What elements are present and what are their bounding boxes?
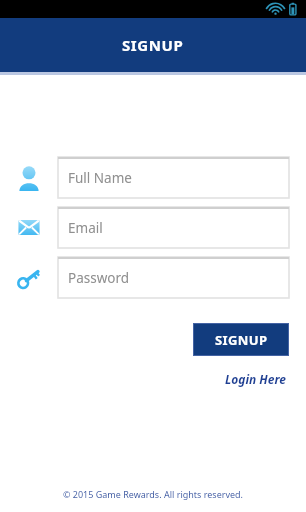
other: Email	[0, 207, 58, 248]
staticText: SIGNUP	[122, 35, 184, 55]
button[interactable]: Full Name	[58, 157, 289, 198]
staticText: © 2015 Game Rewards. All rights reserved…	[0, 488, 306, 500]
staticText: SIGNUP	[215, 331, 268, 349]
staticText: Full Name	[68, 169, 132, 187]
button[interactable]: SIGNUP	[193, 323, 289, 356]
button[interactable]: Login Here	[222, 369, 289, 389]
staticText: Login Here	[225, 371, 286, 387]
staticText: Password	[68, 269, 130, 287]
button[interactable]: Email	[58, 207, 289, 248]
other: Password	[0, 257, 58, 298]
staticText: Email	[68, 219, 103, 237]
other: Full Name	[0, 157, 58, 198]
button[interactable]: Password	[58, 257, 289, 298]
